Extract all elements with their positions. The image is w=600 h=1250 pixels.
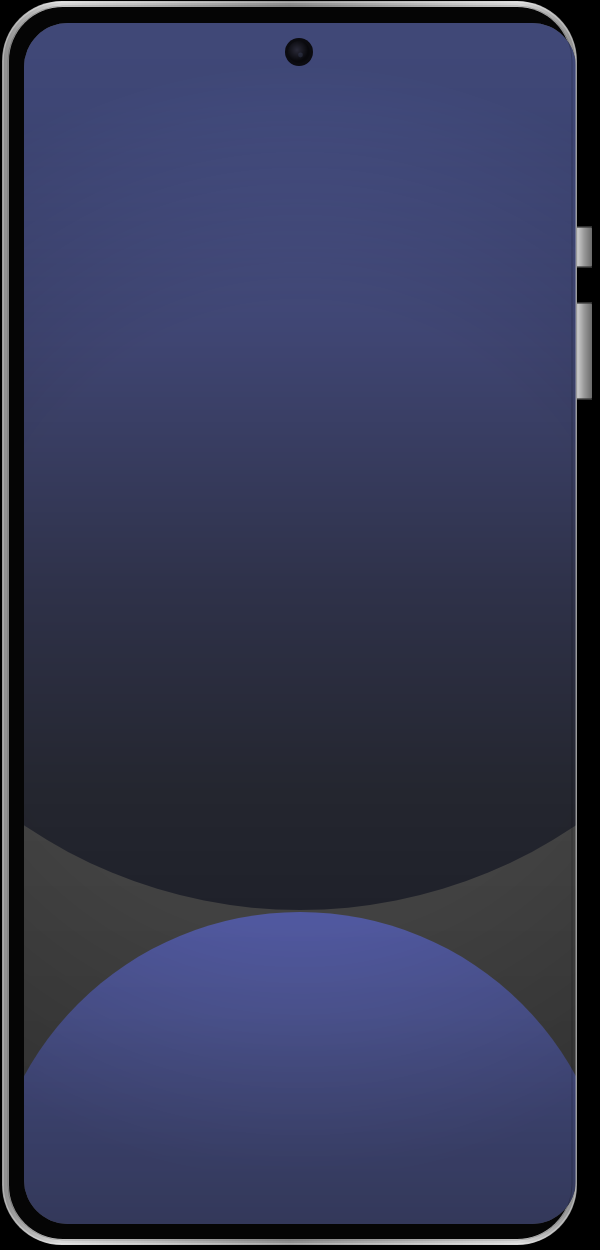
button[interactable]: Phone device preview — [0, 0, 600, 1250]
